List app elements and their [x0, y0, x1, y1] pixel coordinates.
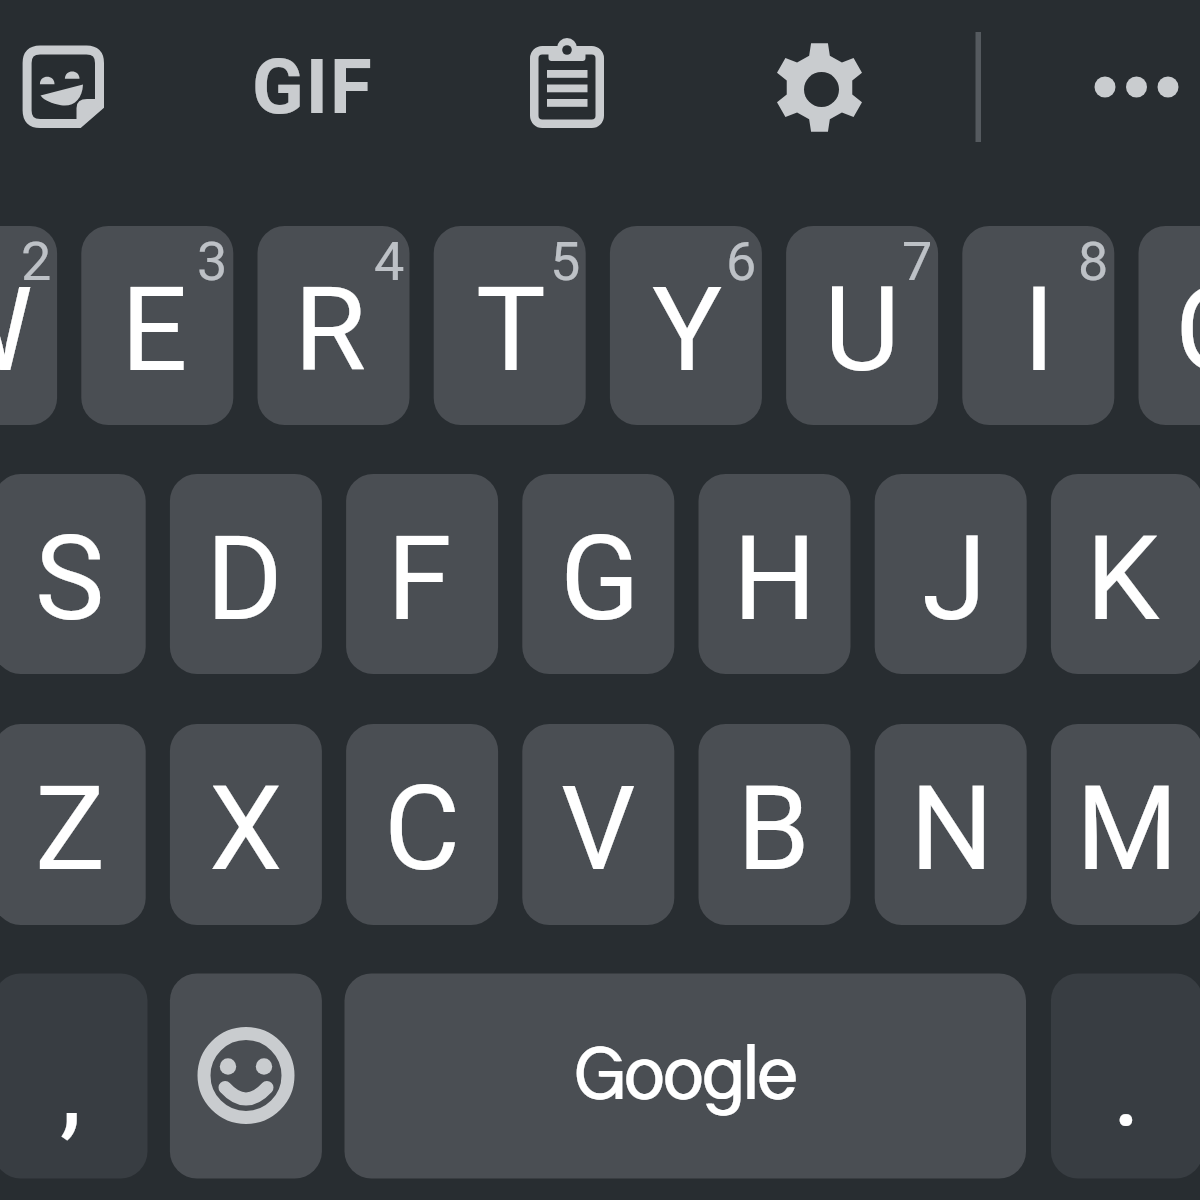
button[interactable]: M [1051, 724, 1200, 925]
button[interactable]: More options [1074, 0, 1200, 174]
button[interactable]: C [346, 724, 498, 925]
staticText: W [0, 261, 33, 398]
staticText: Google [574, 1034, 796, 1115]
button[interactable]: Settings [757, 0, 883, 174]
staticText: B [737, 760, 810, 897]
staticText: 2 [21, 230, 52, 293]
staticText: Z [35, 760, 106, 897]
button[interactable]: Y [610, 226, 762, 425]
button[interactable]: T [434, 226, 586, 425]
staticText: 5 [550, 230, 581, 293]
button[interactable]: Stickers [0, 0, 126, 174]
button[interactable]: K [1051, 474, 1200, 674]
button[interactable]: R [258, 226, 410, 425]
staticText: 8 [1078, 230, 1109, 293]
button[interactable]: W [0, 226, 57, 425]
staticText: T [476, 261, 546, 398]
staticText: M [1076, 760, 1179, 897]
staticText: U [824, 261, 900, 398]
button[interactable]: E [81, 226, 233, 425]
staticText: C [384, 760, 461, 897]
staticText: GIF [252, 42, 374, 131]
staticText: 7 [902, 230, 933, 293]
button[interactable]: F [346, 474, 498, 674]
button[interactable]: Space [345, 974, 1027, 1179]
button[interactable]: O [1139, 226, 1200, 425]
button[interactable]: X [170, 724, 322, 925]
staticText: 3 [197, 230, 228, 293]
staticText: I [1023, 261, 1055, 398]
staticText: E [121, 261, 188, 398]
staticText: V [561, 760, 636, 897]
button[interactable]: S [0, 474, 146, 674]
button[interactable]: Clipboard [503, 0, 629, 174]
button[interactable]: I [962, 226, 1114, 425]
button[interactable]: Z [0, 724, 146, 925]
staticText: O [1175, 261, 1200, 398]
button[interactable]: N [875, 724, 1027, 925]
staticText: S [35, 510, 105, 647]
button[interactable]: GIF keyboard [243, 0, 383, 174]
staticText: K [1086, 510, 1160, 647]
button[interactable]: G [522, 474, 674, 674]
staticText: Google [576, 1034, 798, 1115]
button[interactable]: Emoji [170, 974, 322, 1179]
staticText: , [60, 1023, 82, 1152]
staticText: R [294, 261, 367, 398]
staticText: G [560, 510, 640, 647]
button[interactable]: Period [1051, 974, 1200, 1179]
staticText: J [922, 510, 987, 647]
staticText: Y [652, 261, 723, 398]
staticText: H [733, 510, 817, 647]
button[interactable]: D [170, 474, 322, 674]
button[interactable]: Comma [0, 974, 148, 1179]
button[interactable]: B [699, 724, 851, 925]
button[interactable]: U [786, 226, 938, 425]
staticText: N [910, 760, 994, 897]
staticText: . [1112, 1023, 1142, 1152]
staticText: F [387, 510, 452, 647]
button[interactable]: J [875, 474, 1027, 674]
staticText: D [206, 510, 283, 647]
button[interactable]: V [522, 724, 674, 925]
staticText: X [209, 760, 283, 897]
button[interactable]: H [699, 474, 851, 674]
staticText: 4 [374, 230, 405, 293]
staticText: 6 [726, 230, 757, 293]
